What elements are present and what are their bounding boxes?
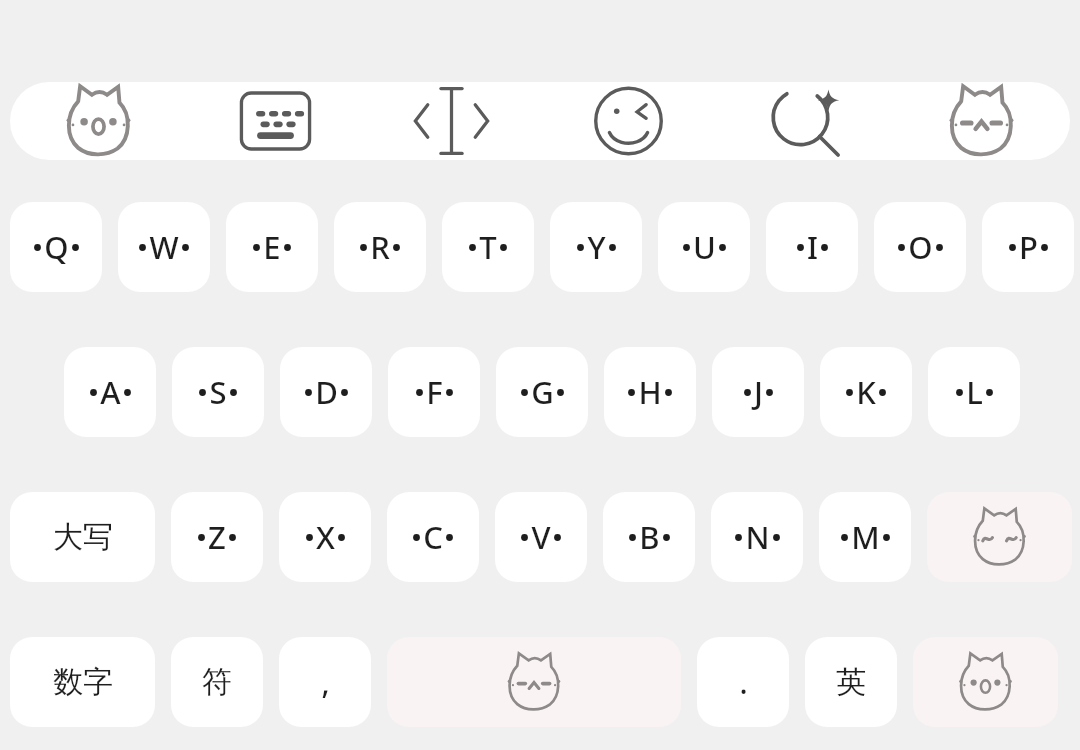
staticText: K <box>856 371 876 413</box>
button[interactable]: I <box>766 202 858 292</box>
staticText: L <box>966 371 983 413</box>
staticText: B <box>639 516 660 558</box>
button[interactable]: D <box>280 347 372 437</box>
staticText: M <box>851 516 880 558</box>
button[interactable]: 英 <box>805 637 897 727</box>
button[interactable]: G <box>496 347 588 437</box>
button[interactable]: Y <box>550 202 642 292</box>
staticText: F <box>426 371 443 413</box>
button[interactable]: 数字 <box>10 637 155 727</box>
button[interactable]: Search <box>717 82 894 160</box>
staticText: R <box>370 226 390 268</box>
staticText: G <box>531 371 554 413</box>
staticText: W <box>149 226 179 268</box>
button[interactable]: Enter <box>913 637 1058 727</box>
button[interactable]: Keyboard settings <box>187 82 364 160</box>
button[interactable]: 大写 <box>10 492 155 582</box>
button[interactable]: Move cursor <box>363 82 540 160</box>
staticText: , <box>321 662 330 703</box>
staticText: X <box>316 516 335 558</box>
button[interactable]: Stickers <box>10 82 187 160</box>
button[interactable]: Theme <box>893 82 1070 160</box>
staticText: J <box>754 371 763 413</box>
staticText: P <box>1019 226 1038 268</box>
staticText: V <box>531 516 551 558</box>
staticText: N <box>745 516 770 558</box>
button[interactable]: E <box>226 202 318 292</box>
button[interactable]: Emoji <box>540 82 717 160</box>
button[interactable]: L <box>928 347 1020 437</box>
button[interactable]: . <box>697 637 789 727</box>
staticText: Z <box>208 516 226 558</box>
button[interactable]: R <box>334 202 426 292</box>
button[interactable]: J <box>712 347 804 437</box>
button[interactable]: S <box>172 347 264 437</box>
staticText: 英 <box>836 663 866 701</box>
staticText: 符 <box>202 663 232 701</box>
button[interactable]: Z <box>171 492 263 582</box>
staticText: A <box>100 371 121 413</box>
staticText: D <box>315 371 338 413</box>
staticText: Q <box>44 226 69 268</box>
staticText: . <box>739 662 748 703</box>
staticText: 大写 <box>53 518 113 556</box>
button[interactable]: Delete <box>927 492 1072 582</box>
staticText: S <box>209 371 227 413</box>
button[interactable]: V <box>495 492 587 582</box>
button[interactable]: U <box>658 202 750 292</box>
button[interactable]: P <box>982 202 1074 292</box>
button[interactable]: Space <box>387 637 681 727</box>
staticText: Y <box>587 226 606 268</box>
staticText: H <box>638 371 662 413</box>
button[interactable]: 符 <box>171 637 263 727</box>
staticText: O <box>908 226 933 268</box>
staticText: U <box>693 226 716 268</box>
button[interactable]: C <box>387 492 479 582</box>
button[interactable]: X <box>279 492 371 582</box>
button[interactable]: Q <box>10 202 102 292</box>
button[interactable]: A <box>64 347 156 437</box>
button[interactable]: F <box>388 347 480 437</box>
button[interactable]: , <box>279 637 371 727</box>
button[interactable]: W <box>118 202 210 292</box>
button[interactable]: N <box>711 492 803 582</box>
button[interactable]: H <box>604 347 696 437</box>
staticText: E <box>263 226 281 268</box>
staticText: 数字 <box>53 663 113 701</box>
staticText: T <box>479 226 497 268</box>
staticText: C <box>423 516 443 558</box>
staticText: I <box>807 226 818 268</box>
button[interactable]: K <box>820 347 912 437</box>
button[interactable]: O <box>874 202 966 292</box>
button[interactable]: T <box>442 202 534 292</box>
button[interactable]: B <box>603 492 695 582</box>
button[interactable]: M <box>819 492 911 582</box>
